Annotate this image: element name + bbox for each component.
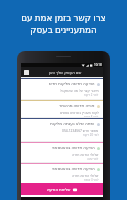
staticText: 054-1234567 מספר חדש	[62, 128, 99, 132]
staticText: צרו קשר בזמן אמת עם	[21, 12, 106, 24]
staticText: 10:18	[94, 63, 102, 67]
button[interactable]: הודעה חדשה בוואטסאפ	[21, 141, 103, 162]
button[interactable]: הודעה חדשה מלקוח חדש	[21, 77, 103, 99]
staticText: המתעניינים בעסק	[30, 24, 97, 36]
staticText: לפני 20 דקות	[83, 133, 99, 137]
staticText: שליחת הודעה	[47, 187, 71, 192]
staticText: תיאור קצר על מה שהתקבל	[60, 88, 99, 92]
button[interactable]: פנייה חדשה מהאתר	[21, 99, 103, 117]
staticText: הודעה חדשה מלקוח חדש	[49, 81, 95, 87]
staticText: לפני 8 דקות	[84, 115, 99, 117]
button[interactable]: Menu	[24, 70, 29, 75]
staticText: שם העסק שלך כאן	[49, 70, 82, 75]
button[interactable]: הודעה חדשה בוואטסאפ	[21, 162, 103, 183]
staticText: שיחה שלא נענתה מלקוח	[50, 121, 95, 127]
staticText: לפני 3 שעות	[84, 178, 99, 182]
button[interactable]: שיחה שלא נענתה מלקוח	[21, 117, 103, 141]
staticText: הודעה חדשה בוואטסאפ	[52, 166, 95, 172]
staticText: שלח/י הודעה חזרה	[72, 173, 99, 177]
staticText: לפני שעה	[87, 157, 99, 161]
staticText: שלח/י הודעה חזרה	[72, 152, 99, 156]
staticText: פנייה חדשה מהאתר	[59, 103, 95, 109]
staticText: לפני 2 דקות	[84, 93, 99, 97]
staticText: הודעה חדשה בוואטסאפ	[52, 145, 95, 151]
button[interactable]: שליחת הודעה	[21, 183, 103, 195]
staticText: לקוח מעוניין בפרטים נוספים	[60, 110, 99, 114]
